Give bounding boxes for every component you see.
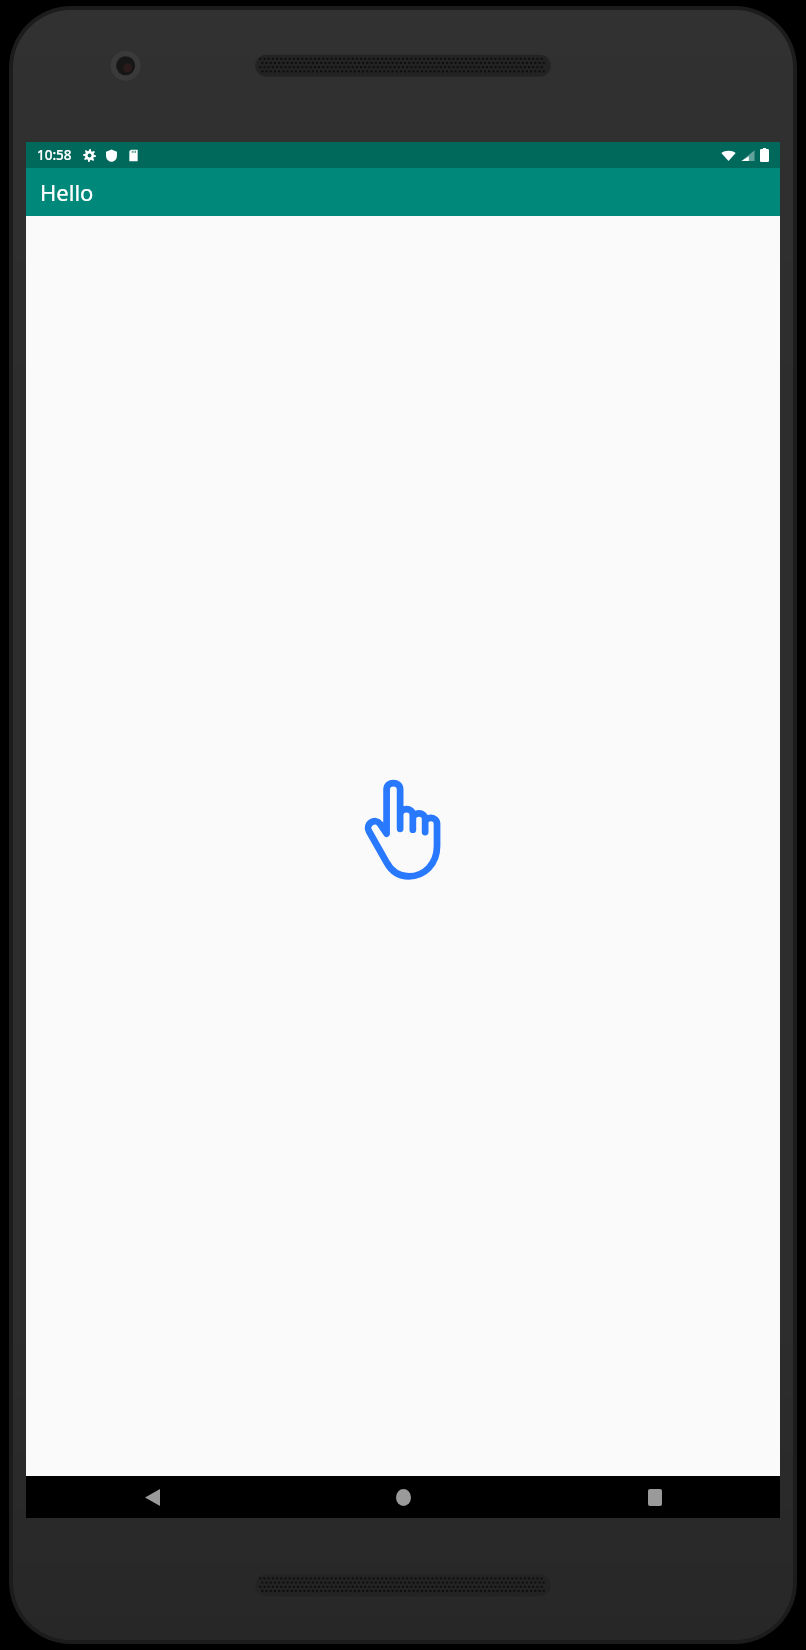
staticText: Hello [40, 177, 94, 207]
button[interactable]: Home [278, 1476, 529, 1518]
button[interactable]: Recent apps [529, 1476, 780, 1518]
staticText: 10:58 [37, 146, 72, 164]
button[interactable]: Tap here [362, 778, 444, 878]
button[interactable]: Back [26, 1476, 278, 1518]
